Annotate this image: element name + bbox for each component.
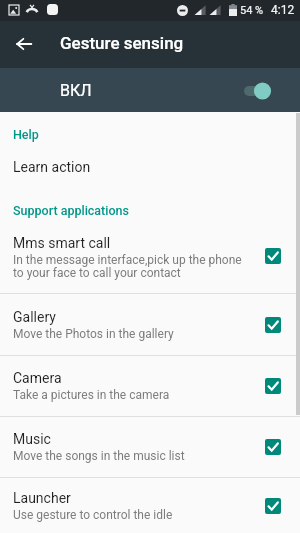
staticText: Mms smart call (13, 235, 111, 251)
staticText: Gallery (13, 309, 56, 325)
staticText: 54 % (240, 4, 264, 17)
staticText: Gesture sensing (60, 33, 184, 53)
staticText: Help (13, 127, 39, 142)
staticText: Music (13, 431, 51, 447)
staticText: Use gesture to control the idle (13, 508, 173, 522)
button[interactable]: Camera (0, 356, 300, 416)
staticText: Move the songs in the music list (13, 449, 185, 463)
button[interactable]: Music (0, 417, 300, 477)
button[interactable]: Launcher (0, 478, 300, 533)
staticText: ВКЛ (60, 81, 92, 100)
staticText: Learn action (13, 159, 91, 175)
button[interactable]: Navigate up (8, 28, 39, 59)
button[interactable]: Gallery (0, 294, 300, 355)
button[interactable]: ВКЛ (0, 68, 300, 112)
staticText: 4:12 (271, 3, 295, 17)
staticText: Support applications (13, 203, 129, 218)
button[interactable]: Mms smart call (0, 222, 300, 293)
staticText: In the message interface,pick up the pho… (13, 253, 242, 280)
staticText: Take a pictures in the camera (13, 388, 170, 402)
staticText: Move the Photos in the gallery (13, 327, 174, 341)
staticText: Launcher (13, 490, 71, 506)
button[interactable]: Learn action (0, 142, 300, 188)
staticText: Camera (13, 370, 62, 386)
